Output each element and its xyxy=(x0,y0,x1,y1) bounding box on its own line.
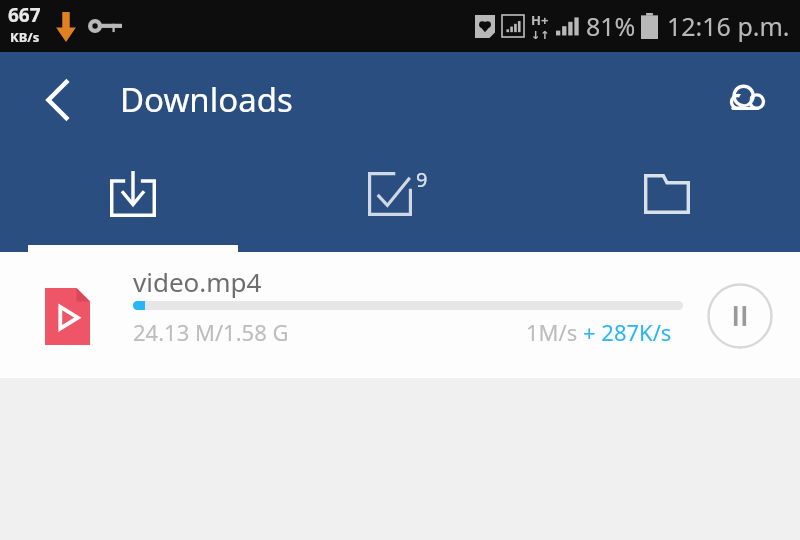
button[interactable]: Folders xyxy=(533,148,800,252)
staticText: video.mp4 xyxy=(133,264,262,299)
staticText: H+ xyxy=(531,11,549,29)
staticText: Downloads xyxy=(120,77,293,122)
staticText: 1M/s xyxy=(526,317,583,347)
staticText: 667 xyxy=(8,2,41,28)
staticText: + 287K/s xyxy=(583,317,672,347)
staticText: ↓↑ xyxy=(531,29,550,42)
button[interactable]: Back xyxy=(30,72,86,128)
button[interactable]: Cloud xyxy=(720,72,776,128)
button[interactable]: video.mp4 xyxy=(0,252,800,378)
button[interactable]: Downloading xyxy=(0,148,266,252)
button[interactable]: Pause xyxy=(707,283,773,349)
staticText: KB/s xyxy=(10,28,40,46)
button[interactable]: Completed, 9 items xyxy=(266,148,533,252)
staticText: 81% xyxy=(586,9,636,43)
staticText: 12:16 p.m. xyxy=(667,9,790,43)
staticText: 24.13 M/1.58 G xyxy=(133,317,289,347)
staticText: 9 xyxy=(416,166,428,193)
